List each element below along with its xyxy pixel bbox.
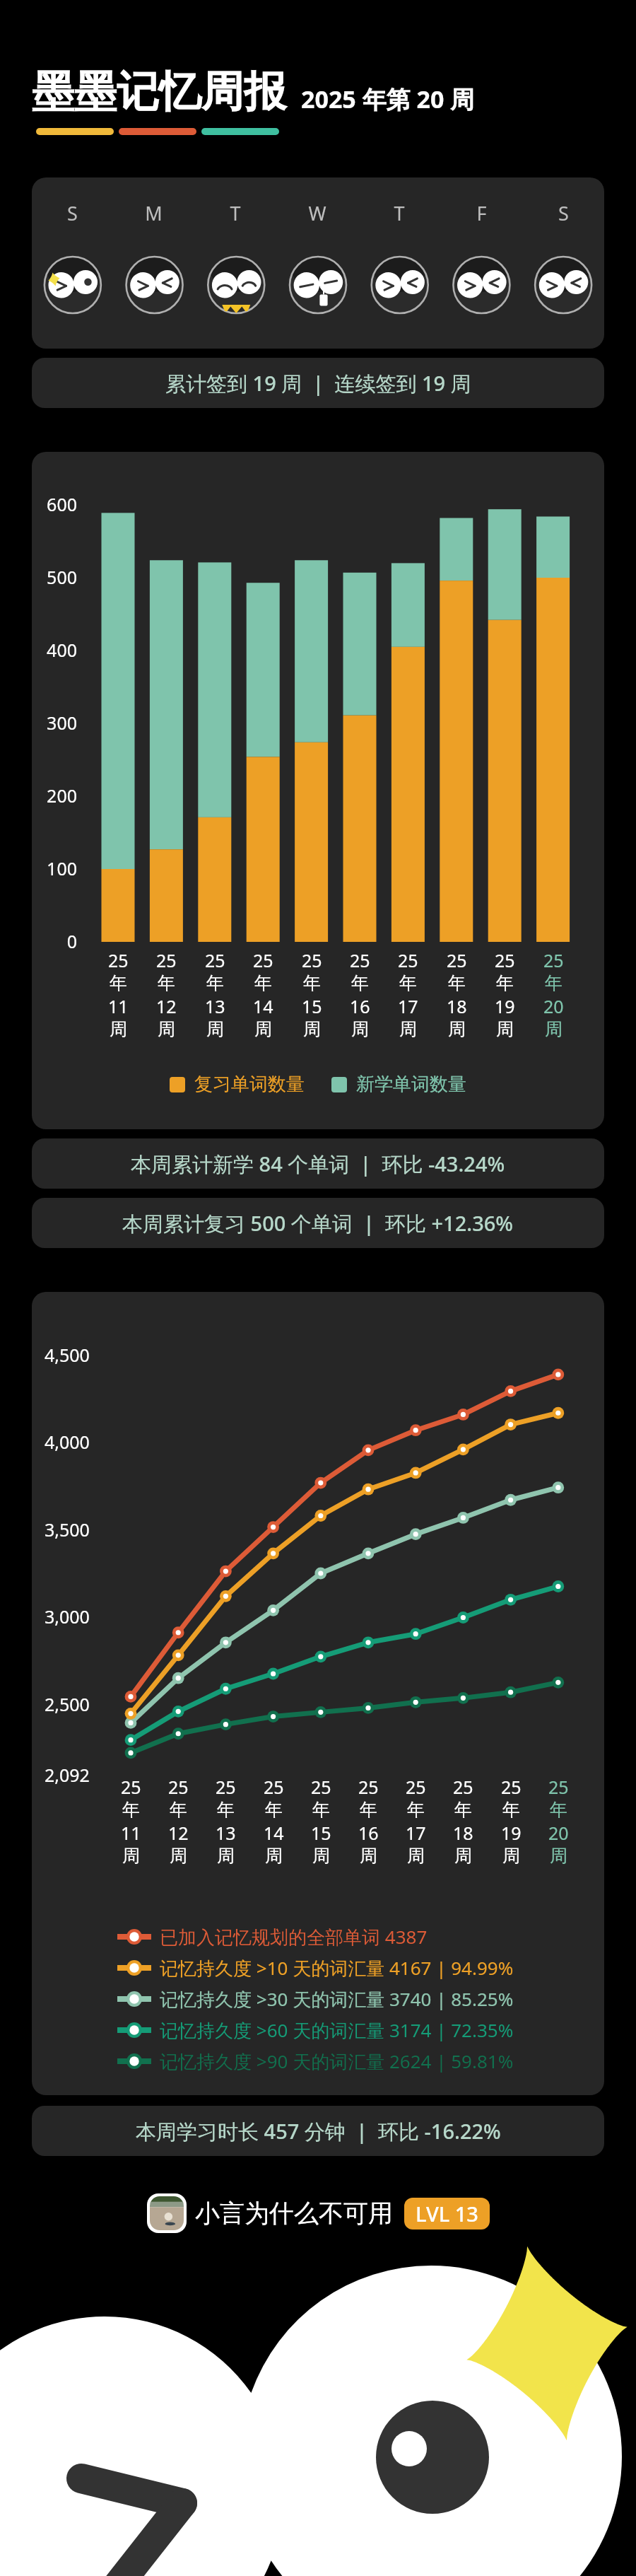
- staticText: 0: [66, 929, 77, 953]
- staticText: 新学单词数量: [356, 1073, 466, 1096]
- staticText: 25: [108, 948, 129, 972]
- staticText: 17: [406, 1821, 426, 1845]
- staticText: 周: [496, 1018, 514, 1040]
- staticText: 年: [265, 1799, 283, 1821]
- staticText: 年: [496, 972, 514, 994]
- staticText: 100: [47, 856, 77, 880]
- staticText: 2,092: [45, 1763, 90, 1787]
- staticText: 25: [156, 948, 177, 972]
- staticText: 周: [265, 1845, 283, 1867]
- staticText: S: [558, 200, 569, 226]
- staticText: 累计签到 19 周 | 连续签到 19 周: [165, 369, 471, 397]
- staticText: 25: [453, 1775, 473, 1799]
- staticText: M: [145, 200, 163, 226]
- staticText: 周: [254, 1018, 272, 1040]
- staticText: 4,000: [45, 1430, 90, 1454]
- staticText: 年: [312, 1799, 330, 1821]
- staticText: 周: [448, 1018, 466, 1040]
- staticText: T: [230, 200, 241, 226]
- staticText: F: [476, 200, 487, 226]
- staticText: 年: [122, 1799, 140, 1821]
- staticText: 25: [495, 948, 515, 972]
- staticText: 周: [170, 1845, 187, 1867]
- staticText: 600: [47, 492, 77, 516]
- staticText: 20: [543, 994, 564, 1018]
- other: Mascot: [0, 0, 636, 2576]
- staticText: 年: [360, 1799, 377, 1821]
- staticText: 周: [545, 1018, 563, 1040]
- staticText: 19: [501, 1821, 522, 1845]
- staticText: 年: [110, 972, 127, 994]
- staticText: 周: [217, 1845, 235, 1867]
- staticText: 年: [217, 1799, 235, 1821]
- staticText: 18: [447, 994, 467, 1018]
- staticText: 300: [47, 711, 77, 735]
- staticText: 年: [454, 1799, 472, 1821]
- staticText: 年: [399, 972, 417, 994]
- staticText: 25: [543, 948, 564, 972]
- staticText: 25: [216, 1775, 236, 1799]
- staticText: 墨墨记忆周报: [32, 65, 286, 119]
- staticText: 12: [156, 994, 177, 1018]
- staticText: 25: [548, 1775, 569, 1799]
- staticText: 14: [264, 1821, 284, 1845]
- staticText: 200: [47, 783, 77, 808]
- staticText: 小言为什么不可用: [195, 2198, 393, 2229]
- staticText: 年: [545, 972, 563, 994]
- staticText: 25: [253, 948, 273, 972]
- staticText: 13: [216, 1821, 236, 1845]
- staticText: 周: [454, 1845, 472, 1867]
- staticText: 本周累计新学 84 个单词 | 环比 -43.24%: [131, 1150, 505, 1178]
- staticText: 周: [550, 1845, 567, 1867]
- staticText: 周: [206, 1018, 224, 1040]
- staticText: 2,500: [45, 1692, 90, 1716]
- staticText: 记忆持久度 >30 天的词汇量 3740 | 85.25%: [160, 1986, 514, 2012]
- button[interactable]: 本周累计复习 500 个单词 | 环比 +12.36%: [32, 1198, 604, 1248]
- staticText: 年: [448, 972, 466, 994]
- staticText: 周: [360, 1845, 377, 1867]
- button[interactable]: 本周累计新学 84 个单词 | 环比 -43.24%: [32, 1138, 604, 1189]
- staticText: 13: [205, 994, 225, 1018]
- staticText: 年: [303, 972, 321, 994]
- button[interactable]: LVL 13: [416, 2198, 478, 2230]
- staticText: 25: [350, 948, 370, 972]
- staticText: 25: [302, 948, 322, 972]
- staticText: 3,000: [45, 1604, 90, 1628]
- staticText: 16: [350, 994, 370, 1018]
- staticText: 500: [47, 565, 77, 589]
- staticText: 2025 年第 20 周: [301, 83, 475, 115]
- staticText: 25: [447, 948, 467, 972]
- staticText: S: [67, 200, 78, 226]
- staticText: 18: [453, 1821, 473, 1845]
- staticText: 25: [501, 1775, 522, 1799]
- staticText: 11: [121, 1821, 141, 1845]
- staticText: 25: [168, 1775, 189, 1799]
- staticText: 25: [398, 948, 418, 972]
- button[interactable]: 本周学习时长 457 分钟 | 环比 -16.22%: [32, 2106, 604, 2156]
- staticText: 14: [253, 994, 273, 1018]
- staticText: 16: [358, 1821, 379, 1845]
- staticText: 年: [351, 972, 369, 994]
- staticText: 4,500: [45, 1343, 90, 1367]
- staticText: 本周学习时长 457 分钟 | 环比 -16.22%: [136, 2117, 501, 2145]
- staticText: 周: [122, 1845, 140, 1867]
- staticText: 15: [311, 1821, 331, 1845]
- staticText: 复习单词数量: [194, 1073, 305, 1096]
- staticText: 记忆持久度 >10 天的词汇量 4167 | 94.99%: [160, 1955, 514, 1981]
- staticText: 周: [110, 1018, 127, 1040]
- staticText: 周: [399, 1018, 417, 1040]
- staticText: 25: [205, 948, 225, 972]
- staticText: T: [394, 200, 405, 226]
- button[interactable]: Profile photo: [150, 2196, 184, 2230]
- staticText: LVL 13: [416, 2200, 478, 2227]
- staticText: 周: [158, 1018, 175, 1040]
- staticText: 20: [548, 1821, 569, 1845]
- button[interactable]: 累计签到 19 周 | 连续签到 19 周: [32, 358, 604, 408]
- staticText: 周: [407, 1845, 425, 1867]
- staticText: 年: [158, 972, 175, 994]
- staticText: 记忆持久度 >60 天的词汇量 3174 | 72.35%: [160, 2017, 514, 2043]
- staticText: 25: [121, 1775, 141, 1799]
- staticText: 年: [170, 1799, 187, 1821]
- staticText: 12: [168, 1821, 189, 1845]
- staticText: 11: [108, 994, 129, 1018]
